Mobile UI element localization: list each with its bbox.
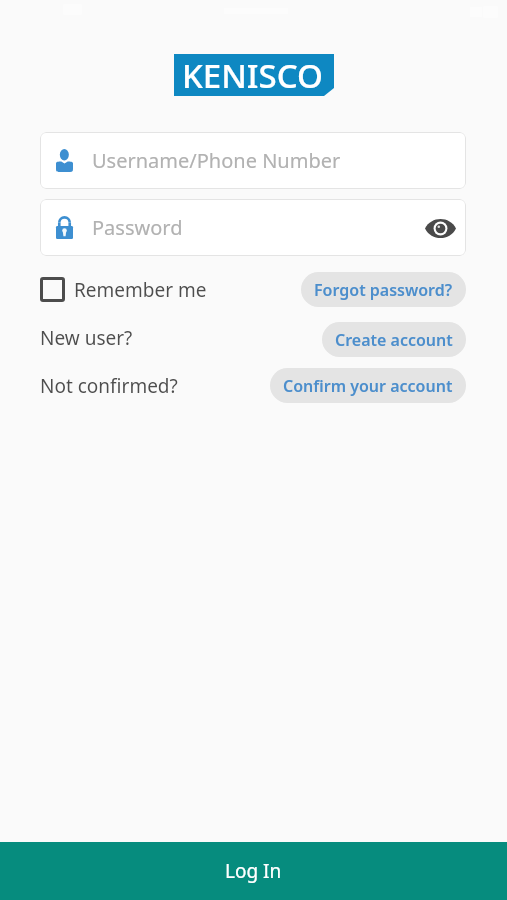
staticText: Confirm your account (283, 375, 453, 397)
staticText: Create account (335, 329, 453, 351)
button[interactable]: Show password (425, 213, 456, 243)
button[interactable]: Remember me (40, 272, 207, 307)
staticText: New user? (40, 325, 133, 351)
button[interactable]: Create account (322, 322, 466, 357)
staticText: Forgot password? (314, 279, 453, 301)
button[interactable]: Username/Phone Number (40, 132, 466, 189)
staticText: KENISCO (182, 53, 323, 95)
staticText: Not confirmed? (40, 373, 178, 399)
staticText: Username/Phone Number (92, 147, 341, 174)
button[interactable]: Confirm your account (270, 368, 466, 403)
button[interactable]: Password (40, 199, 466, 256)
button[interactable]: Log In (0, 842, 507, 900)
button[interactable]: Forgot password? (301, 272, 466, 307)
staticText: Log In (225, 858, 282, 884)
staticText: Password (92, 214, 183, 241)
staticText: Remember me (74, 277, 207, 303)
